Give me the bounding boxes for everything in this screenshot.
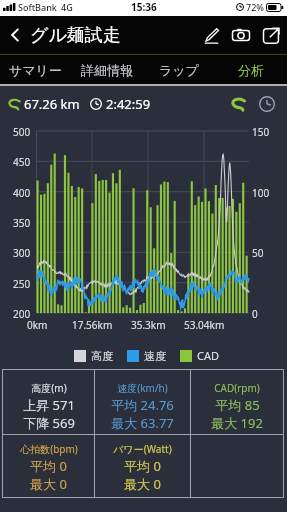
staticText: 速度(km/h)	[117, 381, 168, 395]
button[interactable]: 高度(m)	[3, 370, 94, 432]
staticText: CAD(rpm)	[214, 381, 260, 395]
staticText: 詳細情報	[81, 62, 133, 78]
staticText: 0	[252, 307, 258, 321]
staticText: 17.56km	[72, 318, 113, 332]
staticText: 最大 192	[211, 414, 263, 432]
button[interactable]: サマリー	[0, 55, 71, 84]
button[interactable]: 分析	[215, 55, 287, 84]
staticText: 分析	[238, 62, 264, 78]
button[interactable]: Camera	[226, 16, 256, 54]
staticText: 250	[13, 277, 31, 291]
button[interactable]: CAD(rpm)	[191, 370, 283, 432]
button[interactable]: ラップ	[143, 55, 215, 84]
staticText: 平均 0	[30, 457, 67, 475]
staticText: 平均 85	[215, 396, 260, 414]
staticText: 心拍数(bpm)	[20, 442, 78, 456]
staticText: 最大 0	[124, 475, 161, 493]
staticText: CAD	[197, 348, 220, 363]
button[interactable]: 速度(km/h)	[95, 370, 190, 432]
staticText: 200	[13, 307, 31, 321]
staticText: 2:42:59	[106, 95, 151, 113]
button[interactable]: Back	[0, 16, 30, 54]
staticText: 67.26 km	[24, 95, 80, 113]
staticText: 15:36	[131, 0, 157, 14]
staticText: 150	[252, 125, 270, 139]
staticText: 下降 569	[23, 414, 75, 432]
staticText: 300	[13, 246, 31, 260]
staticText: ラップ	[159, 62, 199, 78]
staticText: 500	[13, 125, 31, 139]
staticText: 450	[13, 155, 31, 169]
staticText: 高度	[91, 349, 113, 363]
staticText: SoftBank	[18, 1, 57, 13]
staticText: 高度(m)	[31, 381, 67, 395]
staticText: 平均 24.76	[111, 396, 174, 414]
staticText: 35.3km	[131, 318, 166, 332]
button[interactable]: Share	[256, 16, 286, 54]
staticText: 72%	[246, 1, 264, 13]
staticText: 速度	[144, 349, 166, 363]
staticText: サマリー	[9, 62, 62, 78]
button[interactable]: Distance	[224, 91, 250, 117]
staticText: 最大 63.77	[111, 414, 174, 432]
button[interactable]: パワー(Watt)	[95, 435, 190, 493]
staticText: 4G	[61, 1, 73, 13]
staticText: グル麺試走	[30, 24, 121, 47]
staticText: 平均 0	[124, 457, 161, 475]
staticText: パワー(Watt)	[113, 442, 172, 456]
button[interactable]: 詳細情報	[71, 55, 143, 84]
staticText: 上昇 571	[23, 396, 75, 414]
staticText: 53.04km	[184, 318, 225, 332]
staticText: 400	[13, 186, 31, 200]
staticText: 50	[252, 246, 264, 260]
staticText: 0km	[27, 318, 48, 332]
button[interactable]: 心拍数(bpm)	[3, 435, 94, 493]
staticText: 100	[252, 186, 270, 200]
button[interactable]: Time	[254, 91, 280, 117]
staticText: 350	[13, 216, 31, 230]
button[interactable]: Edit	[196, 16, 226, 54]
staticText: 最大 0	[30, 475, 67, 493]
